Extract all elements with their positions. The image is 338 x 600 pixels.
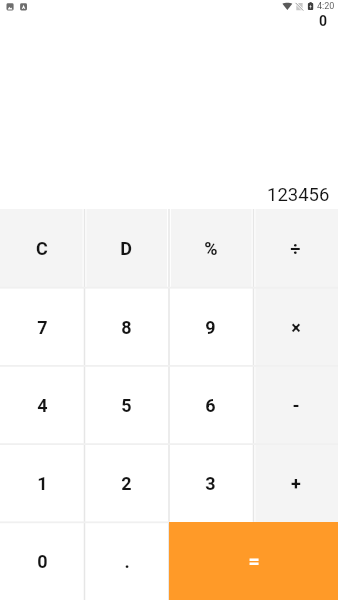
button[interactable]: 4 [0, 366, 84, 444]
button[interactable]: 2 [84, 444, 168, 522]
staticText: C [36, 238, 48, 259]
button[interactable]: C [0, 209, 84, 288]
staticText: 5 [121, 395, 132, 416]
staticText: 4 [37, 395, 48, 416]
button[interactable]: D [84, 209, 168, 288]
button[interactable]: 8 [84, 288, 168, 366]
button[interactable]: 0 [0, 522, 84, 600]
button[interactable]: = [169, 522, 338, 600]
button[interactable]: 1 [0, 444, 84, 522]
staticText: 7 [37, 317, 48, 338]
staticText: . [124, 551, 130, 572]
button[interactable]: ÷ [253, 209, 338, 288]
staticText: 6 [205, 395, 216, 416]
staticText: 1 [37, 473, 48, 494]
button[interactable]: % [168, 209, 253, 288]
staticText: 123456 [267, 184, 330, 206]
staticText: D [120, 238, 132, 259]
button[interactable]: . [84, 522, 169, 600]
staticText: 3 [205, 473, 216, 494]
staticText: 9 [205, 317, 216, 338]
staticText: ÷ [290, 238, 301, 259]
button[interactable]: 6 [168, 366, 253, 444]
staticText: - [292, 395, 300, 416]
staticText: 2 [121, 473, 132, 494]
staticText: + [291, 473, 301, 494]
button[interactable]: 9 [168, 288, 253, 366]
button[interactable]: 7 [0, 288, 84, 366]
staticText: 8 [121, 317, 132, 338]
staticText: × [291, 317, 301, 338]
staticText: 0 [37, 551, 48, 572]
button[interactable]: 3 [168, 444, 253, 522]
button[interactable]: + [253, 444, 338, 522]
staticText: % [204, 238, 218, 259]
button[interactable]: 5 [84, 366, 168, 444]
staticText: 4:20 [317, 1, 335, 12]
staticText: 0 [319, 13, 328, 29]
button[interactable]: × [253, 288, 338, 366]
staticText: = [248, 550, 260, 573]
button[interactable]: - [253, 366, 338, 444]
